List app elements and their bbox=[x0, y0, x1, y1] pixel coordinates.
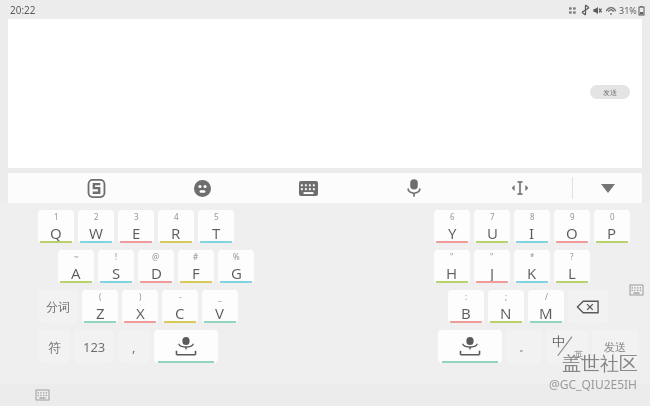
button[interactable]: , bbox=[118, 330, 150, 363]
button[interactable] bbox=[568, 290, 608, 323]
staticText: W bbox=[89, 223, 103, 243]
staticText: # bbox=[193, 251, 199, 262]
staticText: L bbox=[568, 263, 576, 283]
button[interactable]: Voice input bbox=[392, 173, 436, 203]
staticText: / bbox=[545, 291, 548, 302]
button[interactable]: 1 bbox=[38, 210, 74, 243]
button[interactable]: " bbox=[474, 250, 510, 283]
button[interactable]: : bbox=[448, 290, 484, 323]
button[interactable]: Keyboard layout bbox=[286, 173, 330, 203]
staticText: 123 bbox=[83, 338, 106, 356]
staticText: * bbox=[530, 251, 535, 262]
button[interactable]: 2 bbox=[78, 210, 114, 243]
button[interactable]: 6 bbox=[434, 210, 470, 243]
staticText: : bbox=[465, 291, 468, 302]
staticText: 3 bbox=[134, 211, 139, 222]
staticText: ; bbox=[505, 291, 508, 302]
staticText: T bbox=[212, 223, 221, 243]
button[interactable]: % bbox=[218, 250, 254, 283]
staticText: 2 bbox=[94, 211, 99, 222]
staticText: 发送 bbox=[603, 88, 617, 97]
button[interactable]: Sogou input method bbox=[74, 173, 118, 203]
button[interactable]: ; bbox=[488, 290, 524, 323]
staticText: A bbox=[71, 263, 81, 283]
staticText: 4 bbox=[174, 211, 179, 222]
staticText: U bbox=[487, 223, 498, 243]
staticText: E bbox=[132, 223, 141, 243]
staticText: 符 bbox=[48, 339, 61, 355]
button[interactable]: 0 bbox=[594, 210, 630, 243]
button[interactable]: 。 bbox=[506, 330, 542, 363]
button[interactable]: ? bbox=[554, 250, 590, 283]
button[interactable]: ! bbox=[98, 250, 134, 283]
staticText: @ bbox=[152, 251, 160, 262]
button[interactable]: 9 bbox=[554, 210, 590, 243]
staticText: M bbox=[539, 303, 553, 323]
staticText: " bbox=[450, 251, 454, 262]
staticText: G bbox=[231, 263, 242, 283]
button[interactable]: 发送 bbox=[592, 330, 638, 363]
staticText: I bbox=[529, 223, 535, 243]
staticText: 盖世社区 bbox=[562, 352, 638, 376]
staticText: O bbox=[566, 223, 578, 243]
staticText: 。 bbox=[519, 340, 530, 354]
staticText: 5 bbox=[214, 211, 219, 222]
staticText: ) bbox=[139, 291, 142, 302]
staticText: ! bbox=[115, 251, 118, 262]
staticText: - bbox=[179, 291, 182, 302]
staticText: R bbox=[171, 223, 181, 243]
button[interactable]: 发送 bbox=[590, 85, 630, 99]
staticText: 发送 bbox=[604, 340, 626, 354]
staticText: V bbox=[215, 303, 225, 323]
staticText: Q bbox=[50, 223, 62, 243]
button[interactable]: # bbox=[178, 250, 214, 283]
staticText: C bbox=[175, 303, 185, 323]
staticText: J bbox=[490, 263, 495, 283]
staticText: 9 bbox=[570, 211, 575, 222]
staticText: 20:22 bbox=[10, 3, 36, 17]
button[interactable] bbox=[438, 330, 502, 363]
staticText: " bbox=[490, 251, 494, 262]
button[interactable]: - bbox=[162, 290, 198, 323]
button[interactable]: 123 bbox=[74, 330, 114, 363]
button[interactable]: 中 bbox=[546, 330, 588, 363]
button[interactable]: 3 bbox=[118, 210, 154, 243]
staticText: 1 bbox=[54, 211, 59, 222]
button[interactable]: @ bbox=[138, 250, 174, 283]
staticText: % bbox=[233, 251, 240, 262]
button[interactable]: Emoji bbox=[180, 173, 224, 203]
button[interactable] bbox=[154, 330, 218, 363]
staticText: X bbox=[136, 303, 145, 323]
staticText: P bbox=[607, 223, 617, 243]
button[interactable]: ) bbox=[122, 290, 158, 323]
button[interactable]: Move cursor bbox=[498, 173, 542, 203]
staticText: ? bbox=[570, 251, 574, 262]
staticText: Y bbox=[448, 223, 457, 243]
staticText: 8 bbox=[530, 211, 535, 222]
button[interactable]: 分词 bbox=[38, 290, 78, 323]
button[interactable]: ( bbox=[82, 290, 118, 323]
staticText: 分词 bbox=[46, 299, 70, 314]
staticText: K bbox=[527, 263, 537, 283]
staticText: , bbox=[132, 338, 136, 356]
button[interactable]: 4 bbox=[158, 210, 194, 243]
button[interactable]: * bbox=[514, 250, 550, 283]
staticText: 31% bbox=[619, 4, 637, 16]
staticText: H bbox=[446, 263, 458, 283]
staticText: 6 bbox=[450, 211, 455, 222]
staticText: 0 bbox=[610, 211, 615, 222]
button[interactable]: _ bbox=[202, 290, 238, 323]
button[interactable]: 5 bbox=[198, 210, 234, 243]
button[interactable]: " bbox=[434, 250, 470, 283]
staticText: F bbox=[192, 263, 200, 283]
button[interactable]: / bbox=[528, 290, 564, 323]
staticText: Z bbox=[96, 303, 105, 323]
staticText: S bbox=[112, 263, 121, 283]
staticText: ( bbox=[99, 291, 102, 302]
button[interactable]: ~ bbox=[58, 250, 94, 283]
button[interactable]: 7 bbox=[474, 210, 510, 243]
button[interactable]: 符 bbox=[38, 330, 70, 363]
button[interactable]: 8 bbox=[514, 210, 550, 243]
button[interactable]: Hide keyboard bbox=[586, 173, 630, 203]
staticText: 中 bbox=[552, 333, 565, 349]
